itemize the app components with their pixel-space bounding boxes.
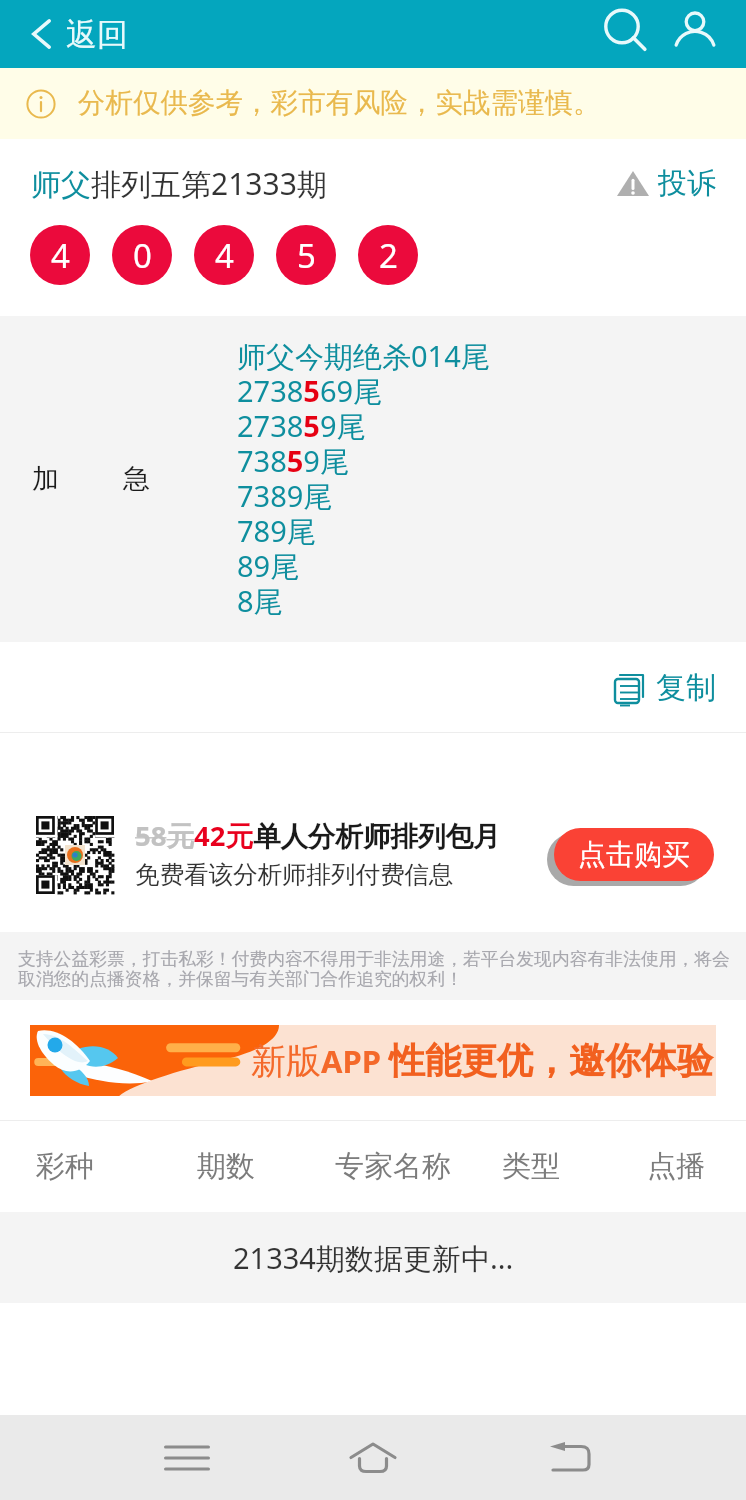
button[interactable]: Back xyxy=(528,1415,614,1500)
button[interactable]: Home xyxy=(330,1415,416,1500)
button[interactable]: Profile xyxy=(664,0,738,68)
staticText: 0 xyxy=(133,233,152,278)
button[interactable]: Menu xyxy=(144,1415,230,1500)
staticText: 89尾 xyxy=(237,546,300,581)
staticText: 2738569尾 xyxy=(237,371,383,406)
staticText: 点播 xyxy=(647,1148,705,1185)
staticText: 复制 xyxy=(656,669,716,707)
staticText: 急 xyxy=(123,462,150,496)
button[interactable]: 彩种 xyxy=(0,1120,140,1212)
staticText: 4 xyxy=(51,233,70,278)
staticText: 5 xyxy=(297,233,316,278)
staticText: 期数 xyxy=(197,1148,255,1185)
staticText: 73859尾 xyxy=(237,441,349,476)
button[interactable]: 投诉 xyxy=(615,159,716,208)
staticText: 师父排列五第21333期 xyxy=(31,163,327,204)
staticText: 返回 xyxy=(66,15,128,54)
button[interactable]: 复制 xyxy=(613,669,716,707)
staticText: 8尾 xyxy=(237,581,283,616)
staticText: 58元42元单人分析师排列包月 xyxy=(135,817,501,855)
staticText: 投诉 xyxy=(658,165,716,202)
staticText: 4 xyxy=(215,233,234,278)
staticText: 师父今期绝杀014尾 xyxy=(237,336,490,371)
button[interactable]: 新版APP 性能更优，邀你体验 xyxy=(30,1025,716,1096)
staticText: 分析仅供参考，彩市有风险，实战需谨慎。 xyxy=(78,86,601,121)
staticText: 21334期数据更新中... xyxy=(233,1238,514,1278)
staticText: 彩种 xyxy=(36,1148,94,1185)
staticText: 类型 xyxy=(502,1148,560,1185)
button[interactable]: 点播 xyxy=(601,1120,746,1212)
button[interactable]: Search xyxy=(588,0,664,68)
staticText: 789尾 xyxy=(237,511,316,546)
staticText: 点击购买 xyxy=(578,837,690,872)
button[interactable]: 专家名称 xyxy=(318,1120,468,1212)
staticText: 新版APP 性能更优，邀你体验 xyxy=(251,1038,714,1083)
staticText: 加 xyxy=(32,462,59,496)
staticText: 支持公益彩票，打击私彩！付费内容不得用于非法用途，若平台发现内容有非法使用，将会… xyxy=(18,948,730,990)
staticText: 273859尾 xyxy=(237,406,366,441)
button[interactable]: 返回 xyxy=(0,0,142,68)
staticText: 免费看该分析师排列付费信息 xyxy=(135,859,454,890)
staticText: 专家名称 xyxy=(335,1148,451,1185)
staticText: 7389尾 xyxy=(237,476,333,511)
button[interactable]: 点击购买 xyxy=(554,828,714,881)
button[interactable]: 期数 xyxy=(151,1120,301,1212)
button[interactable]: 类型 xyxy=(456,1120,606,1212)
staticText: 2 xyxy=(379,233,398,278)
